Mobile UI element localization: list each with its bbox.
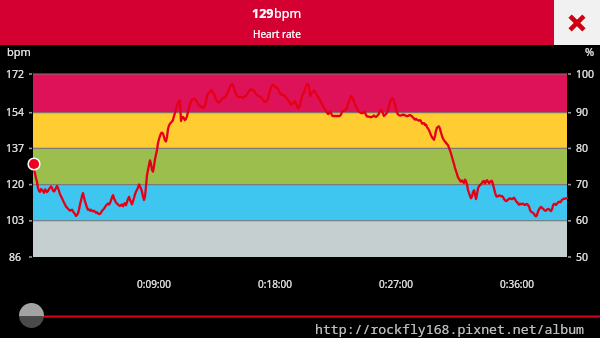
staticText: 90	[576, 105, 589, 119]
staticText: 0:36:00	[485, 277, 549, 291]
staticText: 172	[0, 67, 32, 81]
staticText: 103	[0, 213, 32, 227]
staticText: 100	[576, 67, 595, 81]
staticText: 129	[252, 5, 274, 22]
button[interactable]: Playback position	[19, 303, 44, 328]
button[interactable]: Close	[554, 0, 600, 45]
button[interactable]: Heart rate graph	[33, 74, 567, 257]
staticText: 60	[576, 213, 589, 227]
staticText: 70	[576, 177, 589, 191]
staticText: bpm	[274, 5, 302, 22]
staticText: 137	[0, 141, 32, 155]
staticText: http://rockfly168.pixnet.net/album	[315, 320, 585, 338]
button[interactable]: 129	[0, 0, 554, 45]
staticText: 0:09:00	[122, 277, 186, 291]
staticText: Heart rate	[253, 27, 301, 41]
staticText: 0:27:00	[364, 277, 428, 291]
staticText: 120	[0, 177, 32, 191]
staticText: 80	[576, 141, 589, 155]
staticText: 0:18:00	[243, 277, 307, 291]
staticText: 50	[576, 250, 589, 264]
staticText: bpm	[7, 44, 31, 59]
staticText: 86	[0, 250, 32, 264]
staticText: 154	[0, 105, 32, 119]
staticText: %	[585, 44, 595, 59]
